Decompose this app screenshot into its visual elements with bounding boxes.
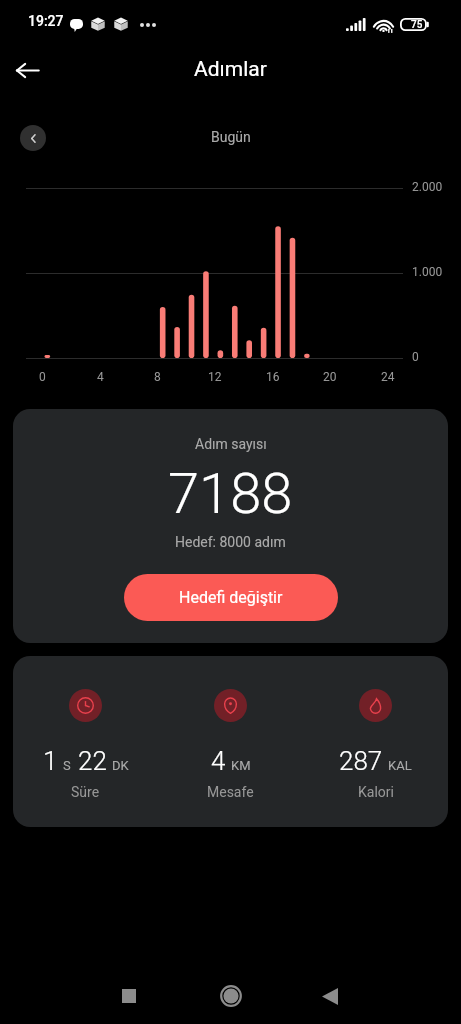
staticText: Adım sayısı — [195, 436, 267, 452]
staticText: Süre — [71, 784, 100, 800]
staticText: KAL — [388, 758, 412, 773]
staticText: KM — [231, 758, 251, 773]
staticText: 75 — [411, 19, 423, 31]
staticText: 24 — [381, 370, 395, 384]
button[interactable]: 4 — [158, 656, 303, 827]
staticText: Kalori — [358, 784, 394, 800]
button[interactable]: Home — [202, 967, 260, 1024]
staticText: 0 — [39, 370, 46, 384]
button[interactable]: Hedefi değiştir — [124, 574, 338, 621]
staticText: 1 — [43, 746, 58, 776]
staticText: 4 — [97, 370, 104, 384]
staticText: Mesafe — [207, 784, 254, 800]
staticText: 8 — [154, 370, 161, 384]
staticText: 0 — [412, 350, 419, 364]
staticText: DK — [112, 758, 129, 773]
staticText: Hedef: 8000 adım — [175, 534, 286, 550]
button[interactable]: Previous day — [20, 125, 46, 151]
staticText: S — [63, 758, 71, 773]
button[interactable]: 287 — [303, 656, 448, 827]
button[interactable]: Back — [301, 967, 359, 1024]
button[interactable]: Back — [5, 48, 49, 92]
button[interactable]: Recents — [100, 967, 158, 1024]
staticText: 2.000 — [412, 180, 443, 194]
staticText: 20 — [323, 370, 337, 384]
staticText: 12 — [208, 370, 222, 384]
button[interactable]: 1 — [13, 656, 158, 827]
staticText: 16 — [266, 370, 280, 384]
staticText: 1.000 — [412, 265, 443, 279]
staticText: 22 — [78, 746, 107, 776]
staticText: Bugün — [211, 129, 251, 145]
staticText: 19:27 — [28, 13, 64, 29]
staticText: 4 — [211, 746, 226, 776]
staticText: 7188 — [168, 461, 293, 527]
staticText: 287 — [339, 746, 383, 776]
staticText: Hedefi değiştir — [179, 588, 283, 607]
staticText: Adımlar — [194, 57, 267, 82]
